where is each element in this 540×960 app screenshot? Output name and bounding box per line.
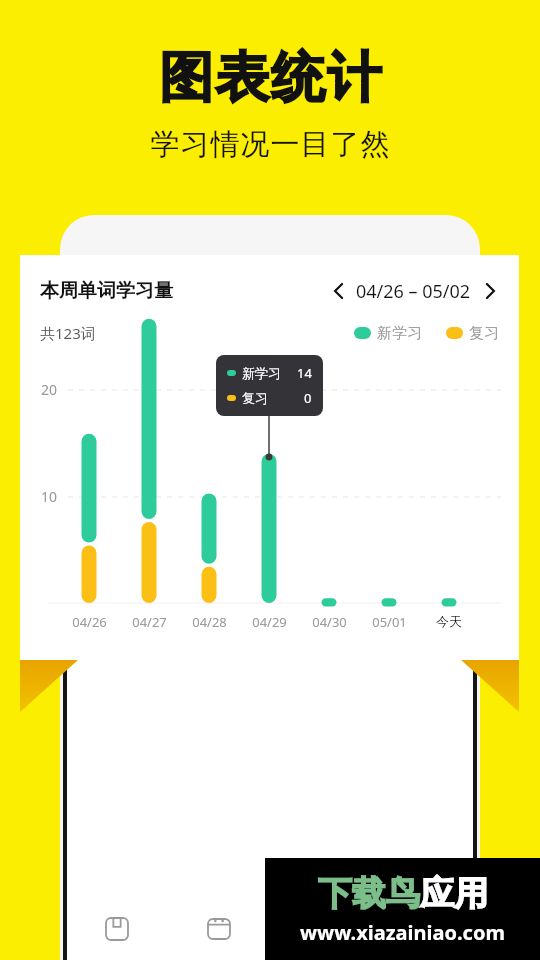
staticText: 应用 — [420, 872, 488, 915]
staticText: 新学习 — [242, 365, 281, 381]
staticText: 14 — [297, 364, 312, 382]
button[interactable]: Next week — [477, 278, 503, 304]
staticText: 新学习 — [377, 324, 422, 343]
button[interactable]: Calendar — [168, 898, 270, 960]
button[interactable]: Previous week — [326, 278, 352, 304]
staticText: 05/01 — [372, 613, 407, 631]
staticText: www.xiazainiao.com — [300, 919, 505, 946]
staticText: 艾宾浩斯遗忘曲线 — [233, 343, 321, 357]
staticText: 10 — [41, 487, 58, 506]
staticText: 下载鸟 — [318, 872, 420, 915]
staticText: 学习情况一目了然 — [150, 126, 390, 163]
staticText: 04/30 — [312, 613, 347, 631]
button[interactable]: Word book — [66, 898, 168, 960]
staticText: 0 — [304, 389, 312, 407]
staticText: 本周单词学习量 — [40, 279, 173, 303]
staticText: 遗忘曲线 — [102, 297, 166, 317]
button[interactable]: 04/26 – 05/02 — [356, 279, 471, 304]
staticText: 复习 — [469, 324, 499, 343]
button[interactable]: Profile — [372, 898, 474, 960]
button[interactable]: 新学习 — [227, 364, 312, 407]
staticText: 今天 — [436, 613, 462, 629]
staticText: 04/29 — [252, 613, 287, 631]
staticText: 04/26 — [72, 613, 107, 631]
staticText: 04/27 — [132, 613, 167, 631]
button[interactable]: Review — [270, 898, 372, 960]
staticText: 复习 — [242, 390, 268, 406]
staticText: 图表统计 — [158, 44, 382, 112]
staticText: 20 — [41, 380, 58, 399]
staticText: 04/28 — [192, 613, 227, 631]
staticText: 共123词 — [40, 323, 96, 343]
